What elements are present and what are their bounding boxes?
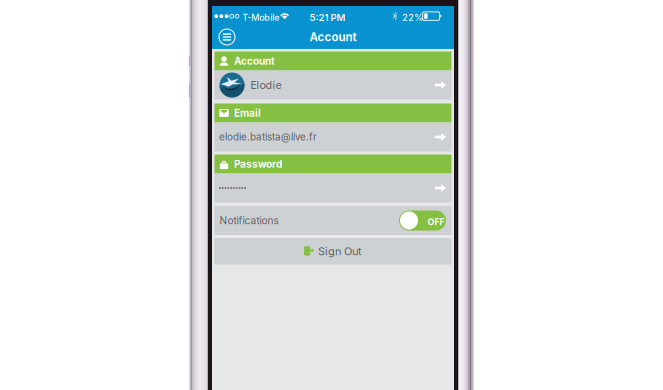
staticText: 5:21 PM: [310, 12, 346, 23]
staticText: Elodie: [250, 78, 281, 91]
button[interactable]: Elodie: [214, 70, 451, 99]
staticText: T-Mobile: [242, 12, 279, 23]
staticText: Account: [309, 30, 356, 44]
button[interactable]: Sign Out: [214, 238, 451, 264]
button[interactable]: Menu: [213, 25, 241, 49]
button[interactable]: [214, 173, 451, 202]
staticText: Sign Out: [318, 245, 362, 258]
staticText: Password: [234, 158, 282, 170]
staticText: elodie.batista@live.fr: [219, 131, 317, 143]
staticText: 22%: [402, 12, 423, 23]
staticText: OFF: [427, 217, 444, 227]
staticText: Account: [234, 55, 275, 67]
button[interactable]: elodie.batista@live.fr: [214, 122, 451, 151]
button[interactable]: Notifications: [214, 206, 451, 235]
staticText: Notifications: [219, 214, 278, 227]
staticText: Email: [234, 107, 261, 119]
